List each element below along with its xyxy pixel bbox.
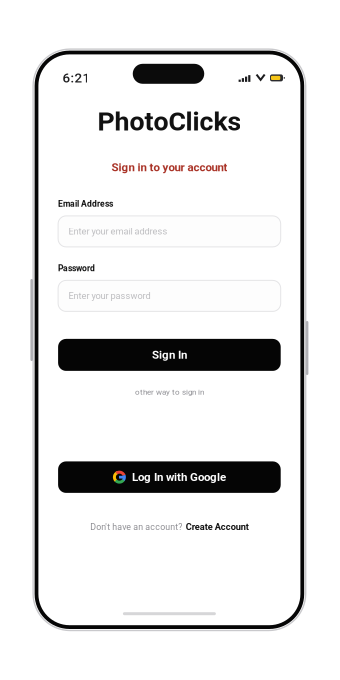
staticText: other way to sign in xyxy=(135,387,204,397)
staticText: Don't have an account? xyxy=(90,522,182,532)
staticText: Enter your password xyxy=(69,290,151,301)
button[interactable]: Log In with Google xyxy=(58,461,281,493)
staticText: Create Account xyxy=(186,521,249,532)
staticText: Enter your email address xyxy=(69,226,168,237)
staticText: PhotoClicks xyxy=(97,106,241,137)
button[interactable]: Enter your email address xyxy=(58,216,281,247)
button[interactable]: Don't have an account? xyxy=(90,522,249,532)
button[interactable]: Enter your password xyxy=(58,280,281,311)
staticText: Email Address xyxy=(58,199,113,209)
button[interactable]: Sign In xyxy=(58,339,281,371)
staticText: Log In with Google xyxy=(132,470,226,484)
staticText: 6:21 xyxy=(62,70,90,86)
staticText: Password xyxy=(58,263,95,273)
staticText: Sign in to your account xyxy=(111,161,227,174)
staticText: Sign In xyxy=(152,348,187,362)
